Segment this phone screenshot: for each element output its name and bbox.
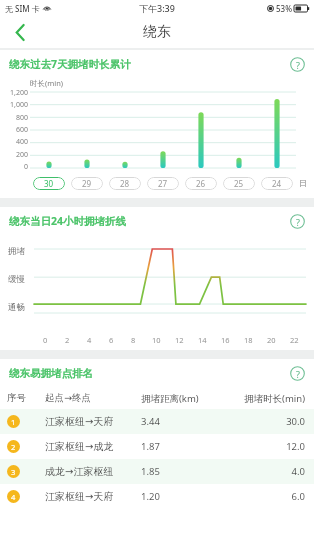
staticText: 14	[198, 335, 207, 345]
staticText: 30	[44, 178, 54, 189]
button[interactable]: Help	[290, 214, 305, 229]
staticText: ?	[296, 59, 300, 71]
staticText: 下午3:39	[139, 2, 175, 14]
staticText: ?	[296, 216, 300, 228]
button[interactable]: 28	[109, 177, 141, 190]
staticText: 绕东过去7天拥堵时长累计	[9, 57, 131, 71]
staticText: 12	[175, 335, 184, 345]
staticText: 缓慢	[8, 274, 25, 285]
button[interactable]: Back	[0, 16, 40, 48]
staticText: 6.0	[223, 490, 305, 503]
button[interactable]: 2	[0, 434, 314, 459]
staticText: 18	[244, 335, 253, 345]
staticText: 起点→终点	[45, 392, 141, 404]
button[interactable]: 25	[223, 177, 255, 190]
staticText: 22	[290, 335, 299, 345]
staticText: 0	[23, 162, 28, 172]
staticText: 3	[11, 467, 16, 477]
staticText: 8	[131, 335, 136, 345]
staticText: 16	[221, 335, 230, 345]
staticText: 30.0	[223, 415, 305, 428]
staticText: 1,000	[10, 100, 28, 110]
staticText: 27	[158, 178, 168, 189]
staticText: 4	[87, 335, 92, 345]
staticText: 20	[267, 335, 276, 345]
staticText: 28	[120, 178, 130, 189]
staticText: 1.85	[141, 465, 223, 478]
staticText: 3.44	[141, 415, 223, 428]
staticText: 0	[43, 335, 48, 345]
staticText: 绕东	[143, 23, 171, 41]
staticText: 绕东易拥堵点排名	[9, 367, 93, 380]
button[interactable]: 27	[147, 177, 179, 190]
staticText: 29	[82, 178, 92, 189]
button[interactable]: 24	[261, 177, 293, 190]
button[interactable]: Help	[290, 366, 305, 381]
staticText: 江家枢纽→天府	[45, 415, 141, 428]
staticText: 时长(min)	[30, 78, 64, 88]
staticText: 2	[11, 442, 16, 452]
button[interactable]: 4	[0, 484, 314, 509]
staticText: 4	[11, 492, 16, 502]
staticText: 200	[15, 150, 28, 160]
staticText: 拥堵时长(min)	[223, 392, 305, 405]
staticText: 1	[11, 417, 16, 427]
staticText: 无 SIM 卡	[5, 3, 40, 14]
staticText: 拥堵	[8, 246, 25, 257]
staticText: 24	[272, 178, 282, 189]
staticText: 通畅	[8, 302, 25, 313]
staticText: 序号	[7, 392, 45, 404]
button[interactable]: 1	[0, 409, 314, 434]
staticText: 1.87	[141, 440, 223, 453]
button[interactable]: 29	[71, 177, 103, 190]
staticText: 26	[196, 178, 206, 189]
staticText: 江家枢纽→天府	[45, 490, 141, 503]
staticText: ?	[296, 368, 300, 380]
staticText: 成龙→江家枢纽	[45, 465, 141, 478]
staticText: 2	[65, 335, 70, 345]
staticText: 江家枢纽→成龙	[45, 440, 141, 453]
staticText: 日	[299, 178, 307, 188]
staticText: 12.0	[223, 440, 305, 453]
staticText: 6	[109, 335, 114, 345]
staticText: 10	[152, 335, 161, 345]
staticText: 400	[15, 137, 28, 147]
staticText: 600	[15, 125, 28, 135]
button[interactable]: 30	[33, 177, 65, 190]
staticText: 4.0	[223, 465, 305, 478]
button[interactable]: 3	[0, 459, 314, 484]
button[interactable]: 26	[185, 177, 217, 190]
staticText: 53%	[276, 3, 292, 14]
staticText: 25	[234, 178, 244, 189]
staticText: 1,200	[10, 88, 28, 98]
staticText: 拥堵距离(km)	[141, 392, 223, 405]
staticText: 绕东当日24小时拥堵折线	[9, 214, 127, 228]
button[interactable]: Help	[290, 57, 305, 72]
staticText: 1.20	[141, 490, 223, 503]
staticText: 800	[15, 113, 28, 123]
